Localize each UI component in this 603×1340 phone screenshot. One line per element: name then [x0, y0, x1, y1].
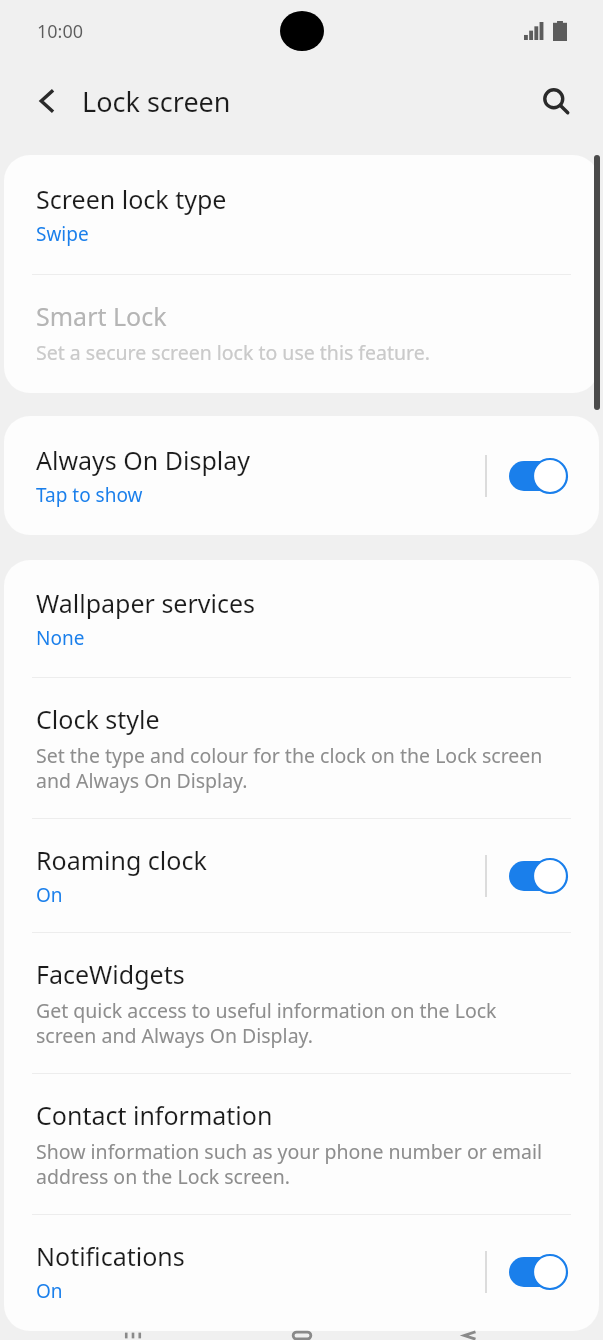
staticText: Get quick access to useful information o…: [36, 997, 555, 1049]
button[interactable]: Notifications: [4, 1215, 599, 1331]
staticText: Show information such as your phone numb…: [36, 1138, 555, 1190]
staticText: 10:00: [37, 19, 84, 44]
staticText: Set a secure screen lock to use this fea…: [36, 339, 430, 366]
staticText: On: [36, 882, 63, 908]
staticText: Swipe: [36, 221, 89, 247]
button[interactable]: Screen lock type: [4, 155, 599, 274]
button[interactable]: Roaming clock toggle: [487, 851, 579, 901]
staticText: Smart Lock: [36, 299, 167, 333]
button[interactable]: Roaming clock: [4, 819, 599, 932]
button[interactable]: Wallpaper services: [4, 560, 599, 677]
staticText: Tap to show: [36, 482, 143, 508]
staticText: Lock screen: [82, 83, 231, 120]
staticText: FaceWidgets: [36, 957, 185, 991]
staticText: On: [36, 1278, 63, 1304]
staticText: None: [36, 625, 85, 651]
staticText: Notifications: [36, 1239, 185, 1273]
button[interactable]: Back: [20, 74, 74, 128]
button[interactable]: Always On Display: [4, 416, 599, 535]
button[interactable]: Search: [529, 74, 583, 128]
button[interactable]: Contact information: [4, 1074, 599, 1214]
staticText: Roaming clock: [36, 843, 207, 877]
staticText: Wallpaper services: [36, 586, 256, 620]
staticText: Clock style: [36, 702, 160, 736]
button[interactable]: Clock style: [4, 678, 599, 818]
staticText: Set the type and colour for the clock on…: [36, 742, 555, 794]
button[interactable]: Home: [267, 1331, 337, 1340]
staticText: Contact information: [36, 1098, 273, 1132]
button[interactable]: Smart Lock: [4, 275, 599, 393]
button[interactable]: Back: [435, 1331, 505, 1340]
staticText: Screen lock type: [36, 182, 227, 216]
button[interactable]: Recent apps: [98, 1331, 168, 1340]
staticText: Always On Display: [36, 443, 251, 477]
button[interactable]: Notifications toggle: [487, 1247, 579, 1297]
button[interactable]: Always On Display toggle: [487, 451, 579, 501]
button[interactable]: FaceWidgets: [4, 933, 599, 1073]
